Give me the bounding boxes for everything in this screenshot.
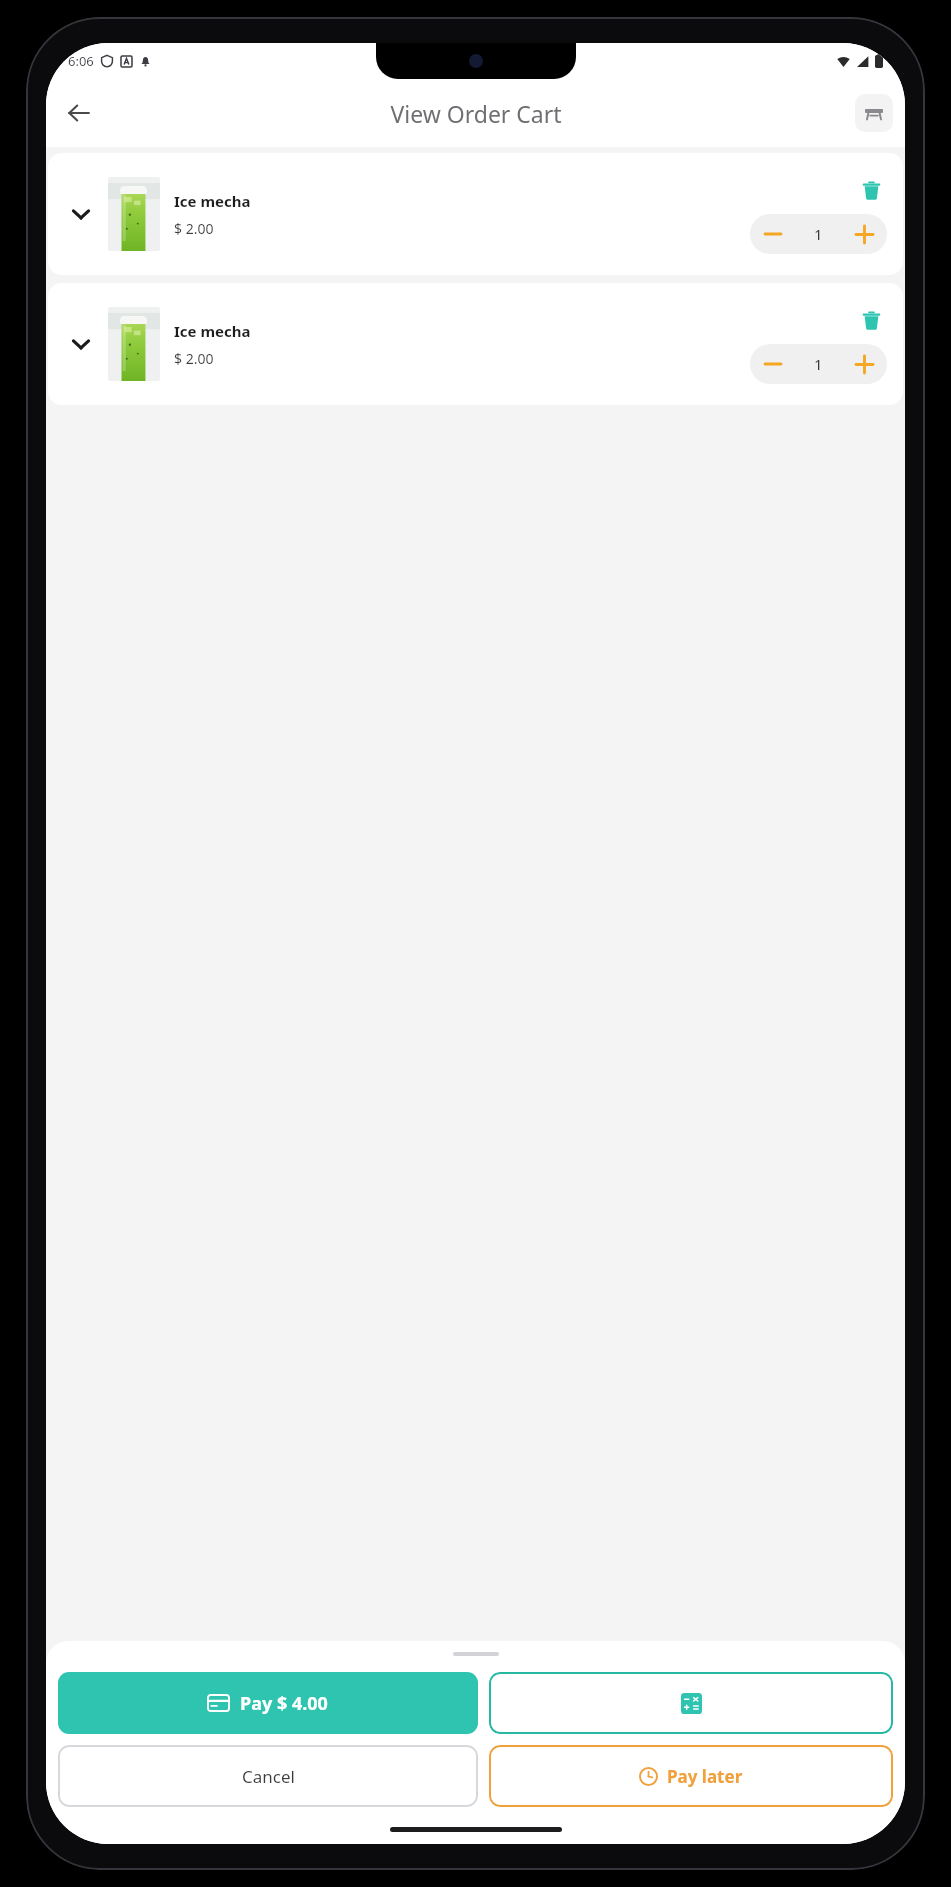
button[interactable]: Expand item	[62, 195, 100, 233]
button[interactable]: Pay $ 4.00	[58, 1672, 478, 1734]
staticText: $ 2.00	[174, 219, 214, 238]
button[interactable]: Calculator	[489, 1672, 893, 1734]
staticText: Ice mecha	[174, 191, 251, 211]
staticText: Cancel	[242, 1765, 295, 1788]
staticText: Pay $ 4.00	[240, 1691, 328, 1716]
button[interactable]: Increase quantity	[841, 214, 887, 254]
staticText: View Order Cart	[390, 98, 562, 129]
button[interactable]: Decrease quantity	[750, 344, 795, 384]
staticText: 1	[814, 224, 823, 244]
button[interactable]: Expand item	[62, 325, 100, 363]
staticText: $ 2.00	[174, 349, 214, 368]
button[interactable]: Delete item	[855, 174, 887, 206]
staticText: 6:06	[68, 52, 94, 70]
button[interactable]: Pay later	[489, 1745, 893, 1807]
staticText: 1	[814, 354, 823, 374]
staticText: Pay later	[667, 1765, 743, 1788]
button[interactable]: Delete item	[855, 304, 887, 336]
staticText: Ice mecha	[174, 321, 251, 341]
button[interactable]: Decrease quantity	[750, 214, 795, 254]
button[interactable]: Expand item	[48, 283, 903, 405]
button[interactable]: Cancel	[58, 1745, 478, 1807]
button[interactable]: Expand item	[48, 153, 903, 275]
button[interactable]: Select table	[855, 94, 893, 132]
button[interactable]: Increase quantity	[841, 344, 887, 384]
button[interactable]: Back	[56, 90, 102, 136]
